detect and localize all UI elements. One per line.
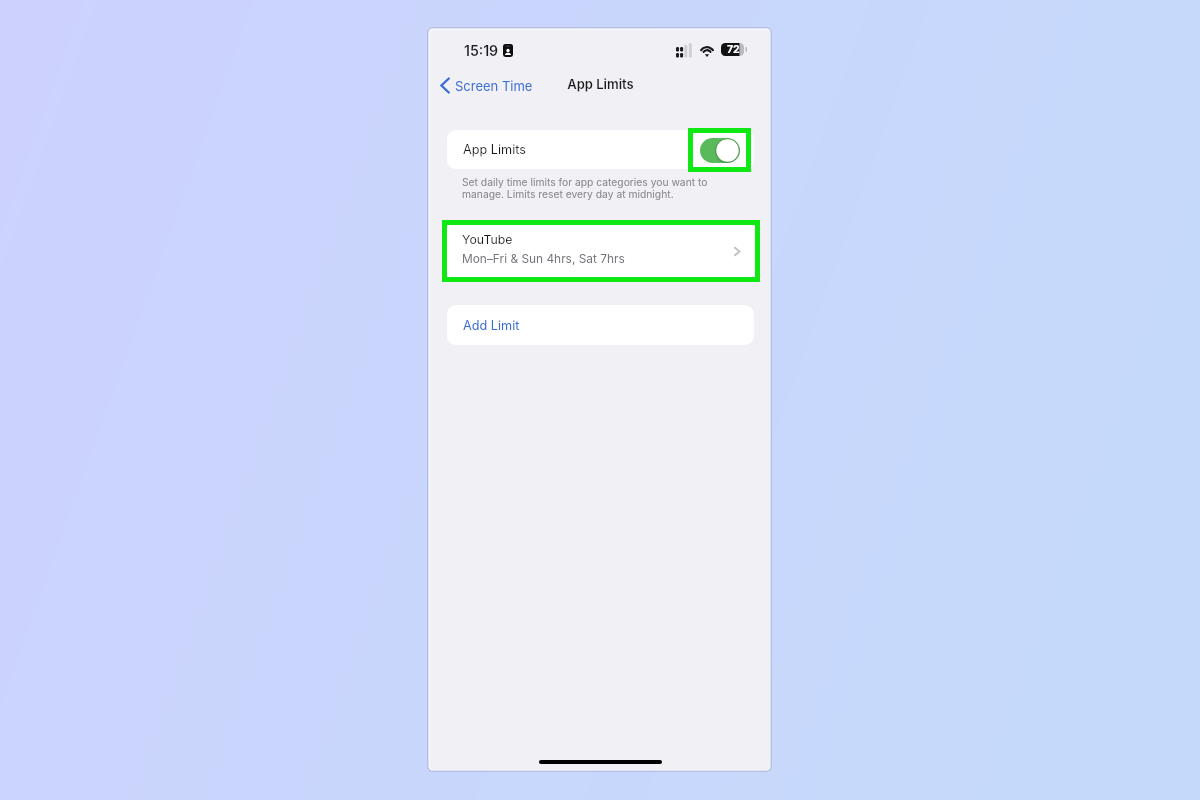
staticText: App Limits <box>463 142 527 157</box>
staticText: Add Limit <box>463 318 520 333</box>
staticText: Mon–Fri & Sun 4hrs, Sat 7hrs <box>462 251 625 265</box>
staticText: 72 <box>727 43 740 56</box>
staticText: YouTube <box>462 232 513 247</box>
staticText: 15:19 <box>464 42 499 59</box>
button[interactable]: Screen Time <box>435 73 538 98</box>
button[interactable]: Add Limit <box>447 305 754 345</box>
button[interactable]: YouTube <box>447 225 755 277</box>
staticText: Screen Time <box>455 78 533 94</box>
staticText: Set daily time limits for app categories… <box>462 176 737 200</box>
button[interactable]: App Limits <box>447 130 754 169</box>
staticText: App Limits <box>567 76 634 92</box>
button[interactable]: App Limits toggle <box>700 138 740 163</box>
